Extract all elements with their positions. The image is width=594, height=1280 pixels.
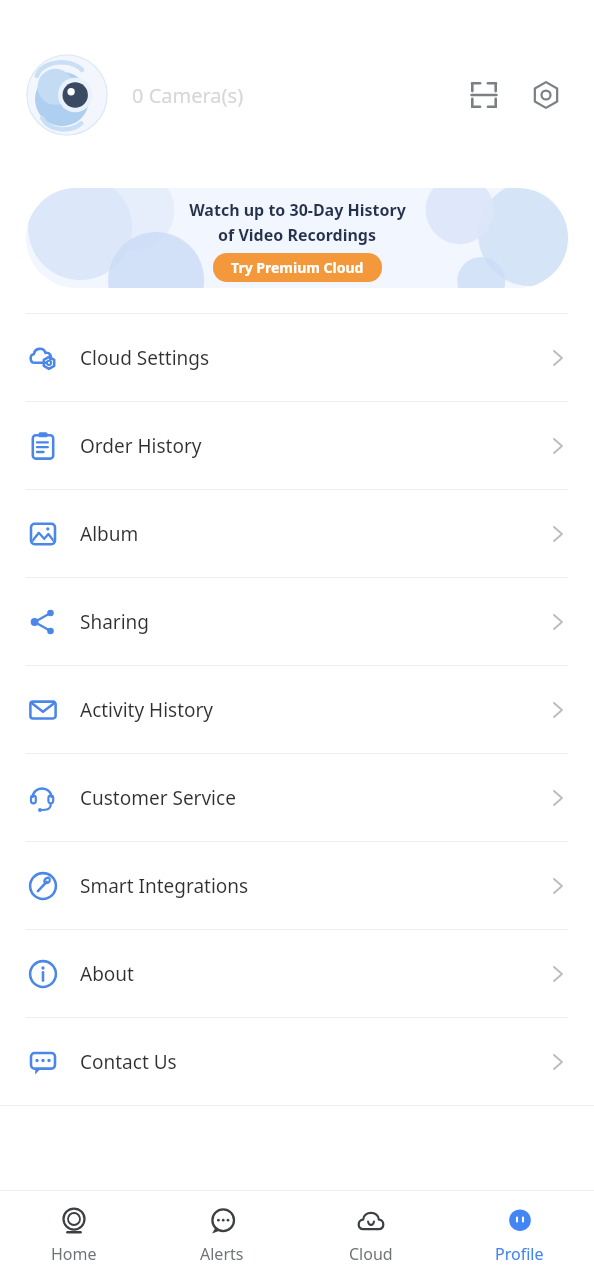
button[interactable]: About: [0, 930, 594, 1017]
button[interactable]: Cloud Settings: [0, 314, 594, 401]
staticText: Album: [80, 521, 139, 547]
button[interactable]: Alerts: [148, 1191, 296, 1280]
staticText: Home: [51, 1243, 97, 1265]
button[interactable]: Customer Service: [0, 754, 594, 841]
staticText: Cloud Settings: [80, 345, 210, 371]
staticText: of Video Recordings: [218, 224, 376, 246]
button[interactable]: Smart Integrations: [0, 842, 594, 929]
staticText: Order History: [80, 433, 202, 459]
staticText: Try Premium Cloud: [231, 258, 364, 277]
staticText: Cloud: [349, 1243, 393, 1265]
button[interactable]: Profile: [445, 1191, 594, 1280]
staticText: Contact Us: [80, 1049, 177, 1075]
button[interactable]: Cloud: [296, 1191, 445, 1280]
button[interactable]: Contact Us: [0, 1018, 594, 1105]
button[interactable]: Album: [0, 490, 594, 577]
staticText: Sharing: [80, 609, 150, 635]
staticText: Profile: [495, 1243, 544, 1265]
staticText: 0 Camera(s): [132, 82, 244, 109]
staticText: Alerts: [200, 1243, 244, 1265]
button[interactable]: Watch up to 30-Day History: [26, 188, 568, 288]
button[interactable]: Profile avatar: [26, 54, 108, 136]
button[interactable]: Home: [0, 1191, 148, 1280]
button[interactable]: Order History: [0, 402, 594, 489]
button[interactable]: Try Premium Cloud: [213, 253, 382, 282]
staticText: Watch up to 30-Day History: [189, 199, 406, 221]
button[interactable]: Scan QR code: [462, 73, 506, 117]
staticText: Activity History: [80, 697, 214, 723]
staticText: Smart Integrations: [80, 873, 249, 899]
button[interactable]: Settings: [524, 73, 568, 117]
staticText: About: [80, 961, 134, 987]
staticText: Customer Service: [80, 785, 236, 811]
button[interactable]: Sharing: [0, 578, 594, 665]
button[interactable]: Activity History: [0, 666, 594, 753]
